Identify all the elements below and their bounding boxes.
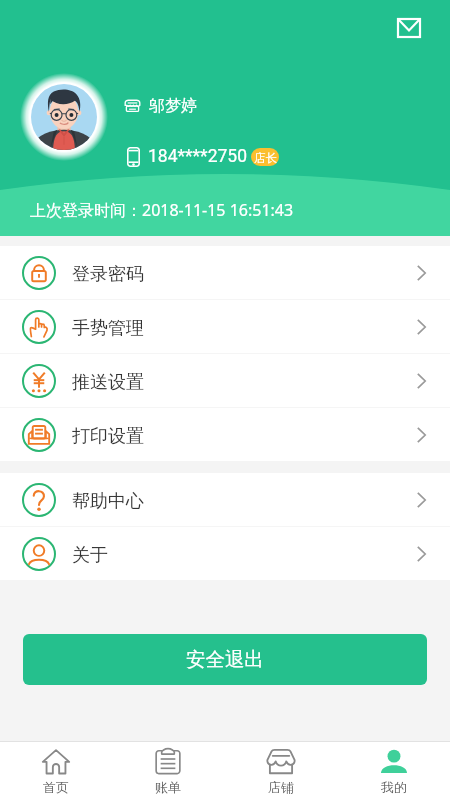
staticText: 邬梦婷 [149, 96, 197, 116]
staticText: 上次登录时间：2018-11-15 16:51:43 [30, 199, 294, 221]
staticText: 打印设置 [72, 425, 144, 448]
staticText: 推送设置 [72, 371, 144, 394]
button[interactable]: 我的 [337, 742, 450, 800]
button[interactable]: 帮助中心 [0, 473, 450, 527]
button[interactable]: 登录密码 [0, 246, 450, 300]
staticText: 我的 [381, 779, 407, 795]
staticText: 184****2750 [148, 146, 247, 167]
button[interactable]: 关于 [0, 527, 450, 580]
staticText: 账单 [155, 779, 181, 795]
button[interactable]: 安全退出 [23, 634, 427, 685]
staticText: 店铺 [268, 779, 294, 795]
button[interactable]: 账单 [112, 742, 224, 800]
button[interactable]: 首页 [0, 742, 112, 800]
staticText: 店长 [254, 151, 277, 165]
staticText: 手势管理 [72, 317, 144, 340]
staticText: 登录密码 [72, 263, 144, 286]
staticText: 关于 [72, 544, 108, 567]
button[interactable]: 推送设置 [0, 354, 450, 408]
button[interactable]: 打印设置 [0, 408, 450, 461]
button[interactable]: Messages [390, 9, 428, 47]
button[interactable]: 店铺 [224, 742, 337, 800]
button[interactable]: 手势管理 [0, 300, 450, 354]
staticText: 首页 [43, 779, 69, 795]
staticText: 安全退出 [186, 647, 264, 672]
staticText: 帮助中心 [72, 490, 144, 513]
